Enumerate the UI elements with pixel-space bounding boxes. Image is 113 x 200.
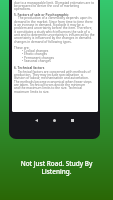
staticText: • Seasonal changes	[22, 59, 51, 63]
staticText: due to a manageable limit. Olympiad esti…	[14, 1, 95, 5]
staticText: are taken. Technical forces decide the m…	[14, 83, 86, 87]
staticText: maximum limits to size.	[14, 90, 50, 94]
staticText: The production of a commodity depends up…	[18, 16, 92, 20]
staticText: production. They may include specialisat…	[14, 73, 83, 77]
staticText: and the maximum limits to the size. Tech…	[14, 86, 83, 90]
staticText: operations.	[14, 7, 31, 11]
staticText: it constitutes a study which influences …	[14, 30, 90, 34]
staticText: uncertainty is influenced by the changes…	[14, 36, 93, 40]
staticText: demand in the market. Since from time to…	[14, 20, 93, 24]
staticText: changes in demand of following types.	[14, 40, 72, 44]
button[interactable]: Back	[35, 119, 38, 122]
staticText: unit and to determine uncertainty is inf…	[14, 33, 95, 37]
staticText: • Erratic changes	[22, 52, 48, 56]
staticText: Technical factors are concerned with met…	[18, 70, 91, 74]
staticText: be prepared to derive the cost of market…	[14, 4, 80, 8]
staticText: The methods become economical when fewer…	[14, 80, 92, 84]
staticText: 6. Technical factors	[14, 66, 45, 70]
staticText: problem and uncertainty before the item.…	[14, 26, 93, 30]
staticText: • Cyclical changes	[22, 49, 49, 53]
staticText: These are:	[14, 46, 30, 50]
staticText: 5. Factors of sale or Psychographic	[14, 13, 69, 17]
staticText: division of labour, mechanisation and au…	[14, 76, 89, 80]
staticText: Not Just Road. Study By Listening.	[10, 159, 103, 176]
staticText: is an increase in demand. Stockpile it m…	[14, 23, 84, 27]
staticText: • Permanent changes	[22, 56, 55, 60]
button[interactable]: Home	[53, 119, 56, 122]
